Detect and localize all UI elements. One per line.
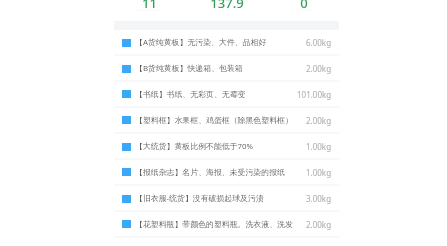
- staticText: 101.00kg: [297, 89, 332, 100]
- staticText: 2.00kg: [306, 219, 332, 230]
- button[interactable]: 已选中: [114, 108, 339, 132]
- staticText: 2.00kg: [306, 63, 332, 74]
- staticText: 【报纸杂志】名片、海报、未受污染的报纸: [135, 167, 285, 177]
- staticText: 【旧衣服-统货】没有破损起球及污渍: [135, 193, 264, 204]
- button[interactable]: 137.9: [188, 0, 265, 21]
- staticText: 【大统货】黄板比例不能低于70%: [135, 141, 254, 152]
- staticText: 11: [142, 0, 157, 12]
- staticText: 【B货纯黄板】快递箱、包装箱: [135, 63, 243, 74]
- staticText: 【A货纯黄板】无污染、大件、品相好: [135, 37, 267, 48]
- staticText: 1.00kg: [306, 141, 332, 152]
- staticText: 137.9: [210, 0, 244, 12]
- staticText: 3.00kg: [306, 193, 332, 204]
- button[interactable]: 已选中: [114, 134, 339, 158]
- button[interactable]: 0: [265, 0, 342, 21]
- button[interactable]: 已选中: [114, 56, 339, 80]
- button[interactable]: 已选中: [114, 186, 339, 210]
- button[interactable]: 已选中: [114, 212, 339, 236]
- button[interactable]: 11: [110, 0, 188, 21]
- staticText: 【花塑料瓶】带颜色的塑料瓶。洗衣液、洗发: [135, 219, 293, 229]
- button[interactable]: 已选中: [114, 160, 339, 184]
- button[interactable]: 已选中: [114, 82, 339, 106]
- staticText: 【塑料框】水果框、鸡蛋框（除黑色塑料框）: [135, 115, 293, 125]
- staticText: 【书纸】书纸、无彩页、无霉变: [135, 89, 246, 99]
- staticText: 1.00kg: [306, 167, 332, 178]
- staticText: 6.00kg: [306, 37, 332, 48]
- staticText: 2.00kg: [306, 115, 332, 126]
- staticText: 0: [300, 0, 308, 12]
- button[interactable]: 已选中: [114, 30, 339, 54]
